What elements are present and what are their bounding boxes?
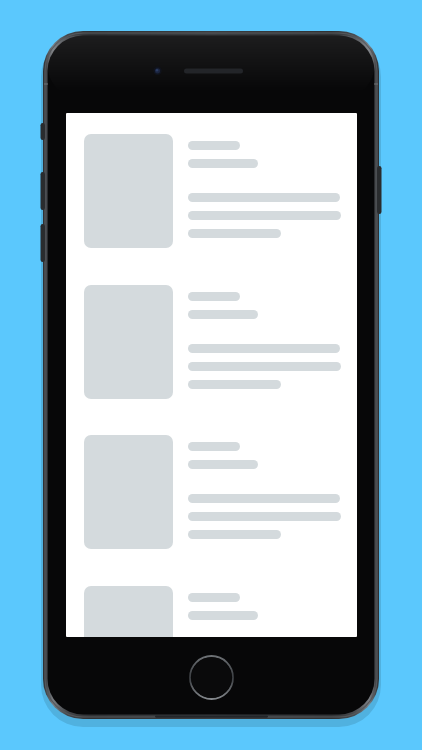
button[interactable]: Home — [190, 656, 233, 699]
button[interactable] — [84, 586, 357, 637]
button[interactable] — [84, 285, 357, 420]
button[interactable] — [84, 435, 357, 570]
button[interactable] — [84, 134, 357, 269]
